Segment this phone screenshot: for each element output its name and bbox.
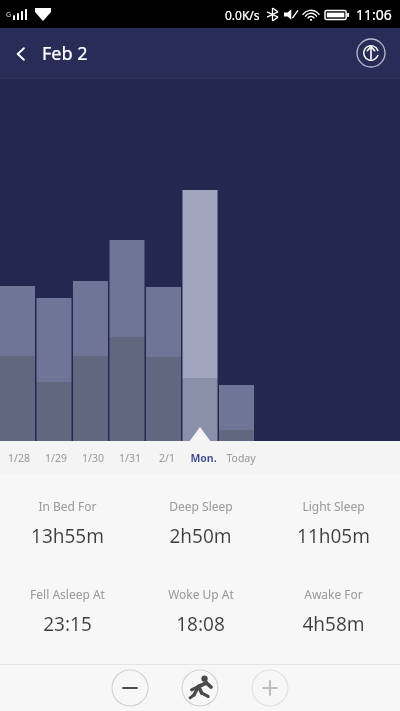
button[interactable]: Light Sleep	[267, 498, 400, 549]
button[interactable]: Woke Up At	[134, 586, 267, 637]
staticText: 18:08	[176, 611, 225, 637]
button[interactable]: Mon.	[185, 441, 222, 474]
staticText: Woke Up At	[168, 586, 234, 602]
staticText: Light Sleep	[302, 498, 365, 514]
button[interactable]: Awake For	[267, 586, 400, 637]
staticText: 0.0K/s	[225, 7, 260, 23]
staticText: Fell Asleep At	[30, 586, 105, 602]
staticText: Awake For	[304, 586, 363, 602]
staticText: Today	[226, 451, 256, 465]
button[interactable]: 1/29	[37, 441, 74, 474]
staticText: 1/31	[119, 451, 141, 465]
staticText: 23:15	[43, 611, 92, 637]
button[interactable]: Decrease	[111, 669, 149, 707]
staticText: 1/30	[82, 451, 104, 465]
staticText: 13h55m	[31, 523, 104, 549]
button[interactable]: In Bed For	[0, 498, 134, 549]
staticText: G	[6, 10, 12, 20]
staticText: Mon.	[190, 451, 217, 465]
staticText: 11h05m	[297, 523, 370, 549]
staticText: Deep Sleep	[169, 498, 233, 514]
button[interactable]: Deep Sleep	[134, 498, 267, 549]
other: Back	[12, 45, 30, 63]
staticText: 1/28	[8, 451, 30, 465]
staticText: 1/29	[45, 451, 67, 465]
button[interactable]: 1/31	[111, 441, 148, 474]
staticText: In Bed For	[38, 498, 97, 514]
button[interactable]: Back	[0, 33, 100, 74]
staticText: 2h50m	[169, 523, 232, 549]
button[interactable]: 1/30	[74, 441, 111, 474]
button[interactable]: Share	[356, 38, 386, 68]
staticText: 4h58m	[302, 611, 365, 637]
button[interactable]: 1/28	[0, 441, 37, 474]
button[interactable]: 2/1	[148, 441, 185, 474]
staticText: 11:06	[356, 5, 392, 24]
staticText: Feb 2	[42, 41, 88, 66]
button[interactable]: Fell Asleep At	[0, 586, 134, 637]
button[interactable]: Today	[222, 441, 259, 474]
staticText: 2/1	[159, 451, 175, 465]
button[interactable]: Activity	[181, 669, 219, 707]
button[interactable]: Increase	[251, 669, 289, 707]
